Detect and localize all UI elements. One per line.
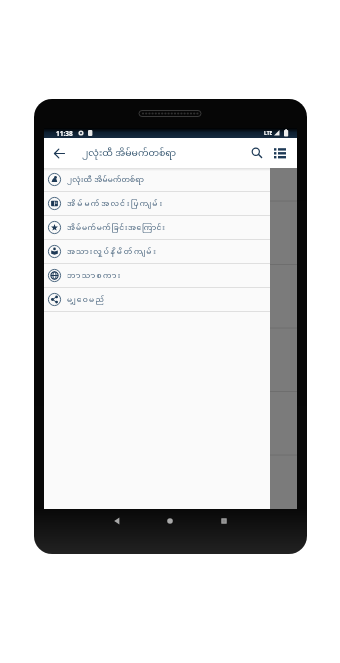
staticText: အိမ်မက်မက်ခြင်းအကြောင်း: [67, 223, 166, 233]
button[interactable]: မျှဝေမည်: [44, 288, 297, 311]
button[interactable]: [249, 140, 265, 166]
button[interactable]: အိမ်မက်အလင်းပြကျမ်း: [44, 192, 297, 215]
button[interactable]: [44, 138, 74, 168]
staticText: ဘာသာစကား: [67, 271, 122, 281]
staticText: ၂လုံးထီ အိမ်မက်တစ်ရာ: [82, 147, 177, 160]
button[interactable]: [265, 138, 295, 168]
staticText: 11:38: [56, 129, 73, 138]
button[interactable]: ဘာသာစကား: [44, 264, 297, 287]
button[interactable]: ၂လုံးထီ အိမ်မက်တစ်ရာ: [44, 168, 297, 191]
staticText: မျှဝေမည်: [67, 295, 107, 305]
button[interactable]: အိမ်မက်မက်ခြင်းအကြောင်း: [44, 216, 297, 239]
staticText: အသားလှုပ်နိမိတ်ကျမ်း: [67, 247, 157, 257]
staticText: အိမ်မက်အလင်းပြကျမ်း: [67, 199, 164, 209]
button[interactable]: အသားလှုပ်နိမိတ်ကျမ်း: [44, 240, 297, 263]
staticText: ၂လုံးထီ အိမ်မက်တစ်ရာ: [67, 175, 145, 185]
staticText: LTE: [264, 130, 273, 137]
